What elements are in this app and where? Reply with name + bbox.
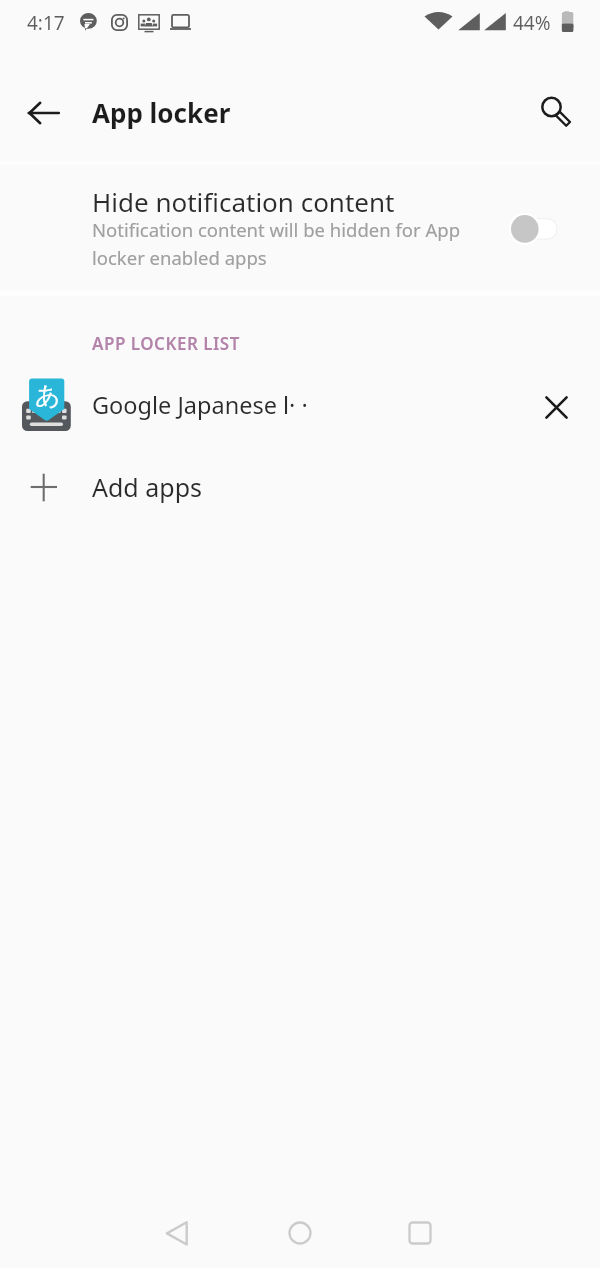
staticText: App locker bbox=[92, 95, 231, 130]
staticText: APP LOCKER LIST bbox=[92, 332, 240, 355]
staticText: Hide notification content bbox=[92, 184, 395, 219]
button[interactable]: Home bbox=[240, 1198, 360, 1268]
staticText: 4:17 bbox=[27, 10, 65, 36]
button[interactable]: Navigate up bbox=[20, 89, 68, 137]
button[interactable]: あ bbox=[0, 371, 600, 443]
staticText: Add apps bbox=[92, 470, 202, 504]
button[interactable]: Remove Google Japanese Input bbox=[534, 385, 578, 429]
button[interactable]: Hide notification content bbox=[0, 162, 600, 294]
staticText: Google Japanese l· · bbox=[92, 389, 308, 421]
staticText: 44% bbox=[513, 10, 551, 36]
button[interactable]: Back bbox=[117, 1198, 237, 1268]
button[interactable]: Search bbox=[533, 90, 581, 138]
button[interactable]: Hide notification content toggle bbox=[498, 196, 570, 242]
button[interactable]: Recent apps bbox=[360, 1198, 480, 1268]
button[interactable]: Add apps bbox=[0, 452, 600, 524]
staticText: Notification content will be hidden for … bbox=[92, 217, 468, 271]
staticText: あ bbox=[35, 380, 61, 411]
